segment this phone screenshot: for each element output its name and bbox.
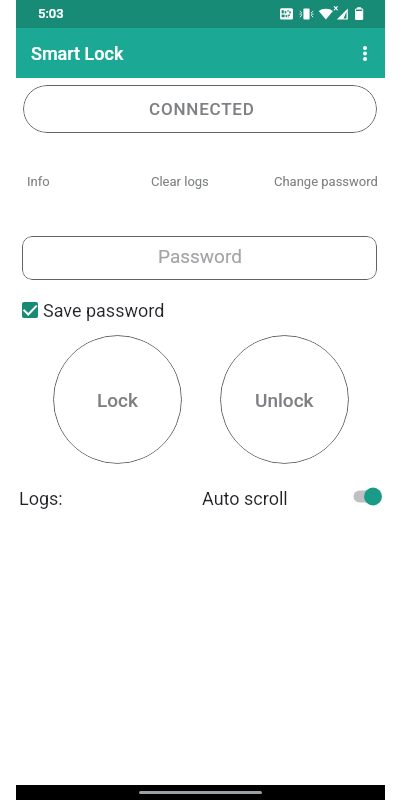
- staticText: Smart Lock: [31, 43, 124, 64]
- staticText: Logs:: [19, 488, 63, 509]
- button[interactable]: Clear logs: [143, 164, 217, 199]
- button[interactable]: Save password: [22, 298, 165, 322]
- button[interactable]: More options: [347, 28, 383, 78]
- button[interactable]: Password: [22, 236, 377, 280]
- staticText: Unlock: [255, 389, 314, 411]
- staticText: Clear logs: [151, 174, 209, 189]
- staticText: Info: [27, 174, 50, 189]
- staticText: CONNECTED: [149, 99, 255, 119]
- staticText: Lock: [97, 389, 138, 411]
- button[interactable]: Lock: [53, 335, 182, 464]
- staticText: Save password: [43, 300, 165, 321]
- staticText: Auto scroll: [202, 488, 288, 509]
- button[interactable]: CONNECTED: [23, 85, 377, 133]
- button[interactable]: Unlock: [220, 335, 349, 464]
- staticText: Password: [158, 245, 242, 267]
- staticText: 5:03: [38, 6, 64, 21]
- button[interactable]: Change password: [266, 164, 386, 199]
- staticText: Change password: [274, 174, 378, 189]
- button[interactable]: Info: [19, 164, 58, 199]
- button[interactable]: Auto scroll toggle: [348, 482, 388, 510]
